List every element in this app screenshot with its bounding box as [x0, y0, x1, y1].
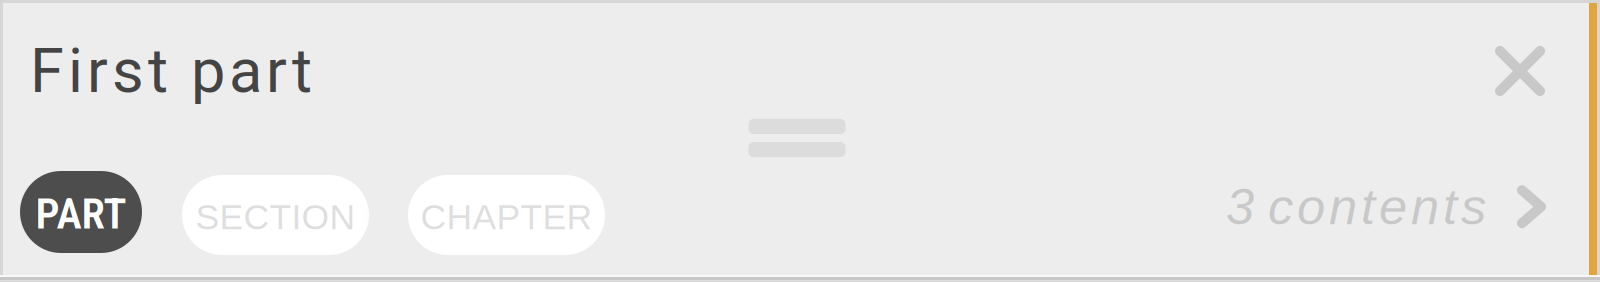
staticText: SECTION [195, 197, 355, 237]
staticText: First part [30, 35, 312, 107]
staticText: CHAPTER [420, 197, 592, 237]
button[interactable]: SECTION [182, 175, 369, 255]
button[interactable]: PART [20, 171, 142, 253]
button[interactable]: Close [1482, 33, 1558, 109]
button[interactable]: 3 c o n t e n t s [1226, 178, 1546, 235]
button[interactable]: CHAPTER [408, 175, 605, 255]
staticText: 3 c o n t e n t s [1226, 178, 1486, 235]
staticText: PART [35, 189, 126, 239]
